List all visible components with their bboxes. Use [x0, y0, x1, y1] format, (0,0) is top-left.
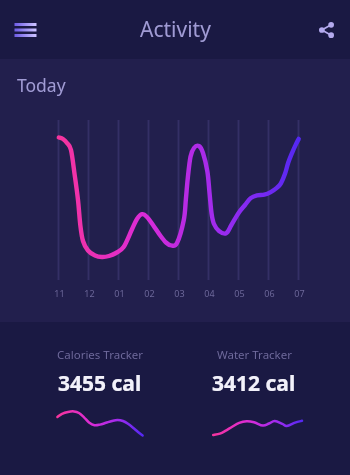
staticText: 04 [204, 287, 215, 299]
staticText: 3412 cal [212, 369, 296, 398]
staticText: 03 [174, 287, 185, 299]
staticText: 11 [54, 287, 65, 299]
button[interactable]: Water Tracker [177, 322, 331, 475]
button[interactable]: Menu [3, 8, 47, 52]
staticText: 05 [234, 287, 245, 299]
button[interactable]: Calories Tracker [23, 322, 177, 475]
staticText: 12 [84, 287, 95, 299]
button[interactable]: Share [306, 10, 346, 50]
staticText: 01 [114, 287, 125, 299]
staticText: 3455 cal [58, 369, 142, 398]
staticText: Activity [140, 15, 211, 44]
staticText: Today [17, 73, 66, 97]
staticText: Water Tracker [217, 347, 292, 363]
staticText: 07 [294, 287, 305, 299]
staticText: 02 [144, 287, 155, 299]
staticText: Calories Tracker [57, 347, 144, 363]
staticText: 06 [264, 287, 275, 299]
